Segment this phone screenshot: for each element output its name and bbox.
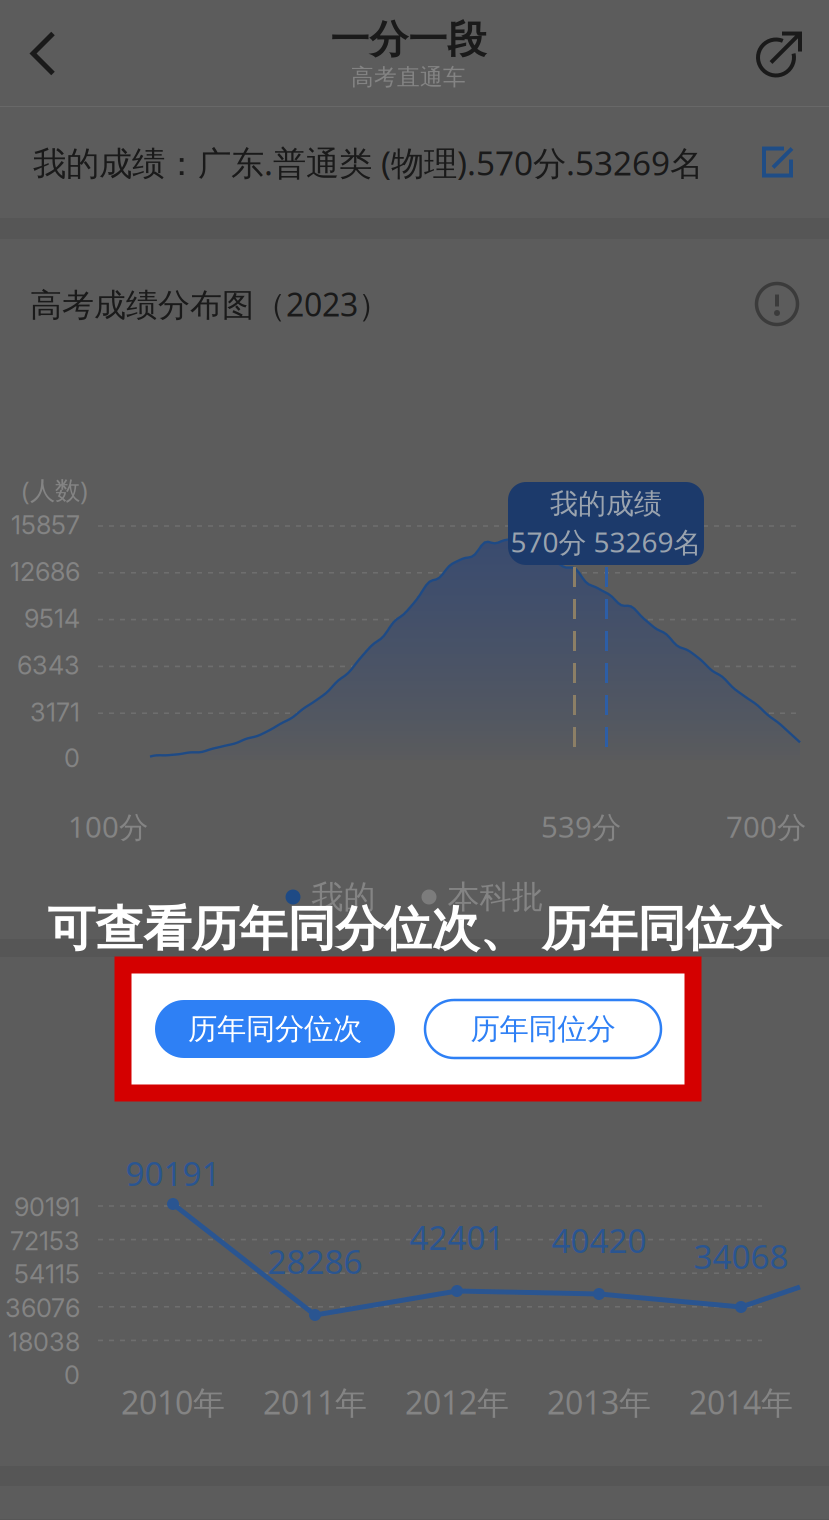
staticText: 36076 <box>5 1293 80 1323</box>
staticText: 9514 <box>24 603 80 634</box>
button[interactable]: Share <box>731 0 829 107</box>
staticText: 40420 <box>551 1218 646 1262</box>
staticText: 42401 <box>409 1215 504 1259</box>
staticText: 12686 <box>10 556 80 587</box>
staticText: 0 <box>64 743 80 773</box>
button[interactable]: About this chart <box>755 282 799 326</box>
staticText: 3171 <box>30 697 80 728</box>
staticText: 700分 <box>726 807 806 846</box>
staticText: 570分 53269名 <box>510 523 701 560</box>
staticText: 高考直通车 <box>351 63 466 91</box>
staticText: 2013年 <box>547 1381 651 1423</box>
staticText: 2014年 <box>689 1381 793 1423</box>
staticText: 54115 <box>14 1259 80 1289</box>
staticText: 我的 <box>311 877 375 917</box>
staticText: 34068 <box>693 1234 788 1278</box>
staticText: 历年同位分 <box>470 1011 615 1047</box>
staticText: 100分 <box>68 807 148 846</box>
staticText: 2011年 <box>263 1381 367 1423</box>
staticText: 15857 <box>11 510 80 540</box>
staticText: 我的成绩 <box>550 487 662 521</box>
staticText: 一分一段 <box>330 16 486 63</box>
staticText: 我的成绩：广东.普通类 (物理).570分.53269名 <box>33 140 703 185</box>
staticText: 72153 <box>10 1226 80 1256</box>
staticText: 0 <box>64 1360 80 1390</box>
staticText: 高考成绩分布图（2023） <box>30 283 390 325</box>
staticText: 90191 <box>125 1151 220 1195</box>
staticText: (人数) <box>22 473 88 507</box>
staticText: 539分 <box>541 807 621 846</box>
button[interactable]: 我的成绩：广东.普通类 (物理).570分.53269名 <box>0 107 829 218</box>
staticText: 可查看历年同分位次、 历年同位分 <box>47 899 781 958</box>
staticText: 本科批 <box>447 877 543 917</box>
staticText: 6343 <box>17 650 80 681</box>
staticText: 历年同分位次 <box>188 1011 362 1047</box>
button[interactable]: 历年同位分 <box>425 1000 661 1058</box>
button[interactable]: Back <box>0 0 86 107</box>
staticText: 90191 <box>14 1192 80 1222</box>
staticText: 2010年 <box>121 1381 225 1423</box>
staticText: 2012年 <box>405 1381 509 1423</box>
staticText: 28286 <box>267 1239 362 1283</box>
staticText: 18038 <box>8 1327 80 1357</box>
button[interactable]: 历年同分位次 <box>155 1000 395 1058</box>
